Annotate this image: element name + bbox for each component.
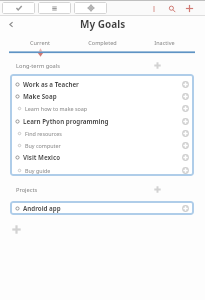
button[interactable]: Goal options xyxy=(180,128,191,139)
button[interactable]: More options xyxy=(147,2,160,15)
staticText: Long-term goals xyxy=(16,62,60,70)
button[interactable]: Add item xyxy=(183,2,196,15)
button[interactable]: Goal options xyxy=(180,103,191,114)
button[interactable]: Completed xyxy=(71,34,133,50)
button[interactable]: Goal options xyxy=(180,140,191,151)
button[interactable]: Notes xyxy=(38,2,71,14)
button[interactable]: Buy computer xyxy=(10,139,194,151)
staticText: Projects xyxy=(16,186,38,194)
staticText: My Goals xyxy=(80,17,126,31)
staticText: Inactive xyxy=(154,39,175,46)
staticText: Visit Mexico xyxy=(23,153,61,161)
button[interactable]: Add section xyxy=(10,223,23,236)
button[interactable]: Learn Python programming xyxy=(10,115,194,127)
staticText: Buy computer xyxy=(25,142,61,149)
staticText: Work as a Teacher xyxy=(23,80,79,88)
button[interactable]: Mark complete xyxy=(2,2,35,14)
button[interactable]: Search xyxy=(165,2,178,15)
button[interactable]: Goal options xyxy=(180,116,191,127)
staticText: Buy guide xyxy=(25,167,51,174)
staticText: Android app xyxy=(23,204,61,212)
staticText: Find resources xyxy=(25,130,62,137)
staticText: Learn Python programming xyxy=(23,117,109,125)
staticText: Learn how to make soap xyxy=(25,105,88,112)
button[interactable]: Back xyxy=(4,17,18,31)
button[interactable]: Goal options xyxy=(180,165,191,176)
button[interactable]: Goal options xyxy=(180,79,191,90)
button[interactable]: Learn how to make soap xyxy=(10,102,194,114)
button[interactable]: Android app xyxy=(10,202,194,214)
button[interactable]: Add long-term goal xyxy=(151,59,164,72)
staticText: Current xyxy=(30,39,50,46)
button[interactable]: Make Soap xyxy=(10,90,194,102)
button[interactable]: Goal options xyxy=(180,203,191,214)
button[interactable]: Goal options xyxy=(180,152,191,163)
button[interactable]: Goal options xyxy=(180,91,191,102)
button[interactable]: Add project xyxy=(151,183,164,196)
staticText: Completed xyxy=(88,39,117,46)
button[interactable]: Find resources xyxy=(10,127,194,139)
button[interactable]: Current xyxy=(9,34,71,50)
button[interactable]: Inactive xyxy=(133,34,195,50)
button[interactable]: Visit Mexico xyxy=(10,151,194,163)
button[interactable]: Add node xyxy=(74,2,107,14)
button[interactable]: Buy guide xyxy=(10,164,194,176)
staticText: Make Soap xyxy=(23,92,57,100)
button[interactable]: Work as a Teacher xyxy=(10,78,194,90)
